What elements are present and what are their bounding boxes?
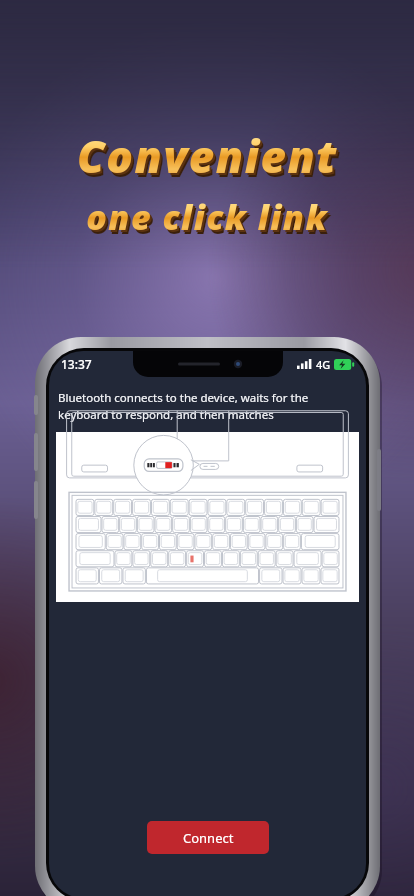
- staticText: Convenient: [77, 126, 338, 186]
- staticText: one click link: [88, 196, 330, 242]
- button[interactable]: Connect: [147, 821, 269, 854]
- staticText: 4G: [316, 357, 331, 372]
- staticText: Convenient: [80, 130, 341, 190]
- staticText: Convenient: [79, 128, 340, 188]
- staticText: 13:37: [61, 356, 92, 372]
- staticText: one click link: [89, 198, 331, 244]
- staticText: Bluetooth connects to the device, waits …: [58, 390, 309, 422]
- staticText: one click link: [86, 194, 328, 240]
- staticText: Connect: [183, 829, 234, 847]
